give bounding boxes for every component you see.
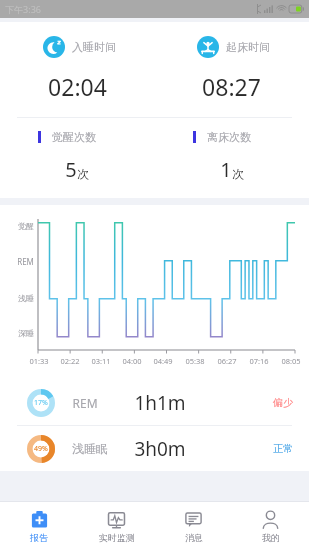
staticText: 我的 (262, 532, 280, 543)
staticText: 觉醒 (18, 221, 34, 231)
button[interactable]: 离床次数 (154, 118, 309, 183)
staticText: 消息 (185, 532, 203, 543)
staticText: 17% (34, 398, 48, 408)
staticText: 起床时间 (226, 40, 270, 54)
staticText: 02:22 (60, 356, 80, 366)
staticText: 03:11 (91, 356, 111, 366)
staticText: 偏少 (273, 396, 293, 409)
staticText: REM (17, 256, 34, 267)
staticText: 1 (220, 156, 232, 183)
staticText: 报告 (30, 532, 48, 543)
staticText: 次 (77, 166, 89, 181)
staticText: 5 (65, 156, 77, 183)
staticText: 3h0m (134, 436, 186, 462)
staticText: 正常 (273, 442, 293, 455)
button[interactable]: 入睡时间 (0, 22, 154, 102)
button[interactable]: 实时监测 (78, 502, 155, 550)
button[interactable]: 49% (0, 426, 309, 471)
staticText: 01:33 (29, 356, 49, 366)
staticText: 04:49 (153, 356, 173, 366)
button[interactable]: 17% (0, 380, 309, 425)
staticText: 实时监测 (99, 532, 135, 543)
staticText: 深睡 (18, 328, 34, 338)
staticText: 08:05 (281, 356, 301, 366)
staticText: 05:38 (185, 356, 205, 366)
button[interactable]: 觉醒次数 (0, 118, 154, 183)
button[interactable]: 消息 (155, 502, 232, 550)
staticText: 1h1m (134, 390, 186, 416)
staticText: 觉醒次数 (52, 130, 96, 144)
staticText: REM (72, 395, 98, 411)
staticText: 下午3:36 (5, 3, 41, 15)
staticText: 浅睡眠 (72, 441, 108, 456)
staticText: 浅睡 (18, 293, 34, 303)
button[interactable]: 起床时间 (154, 22, 309, 102)
staticText: 入睡时间 (72, 40, 116, 54)
staticText: 07:16 (249, 356, 269, 366)
staticText: 次 (232, 166, 244, 181)
button[interactable]: 报告 (0, 502, 78, 550)
staticText: 02:04 (48, 71, 107, 102)
staticText: 08:27 (202, 71, 261, 102)
staticText: 06:27 (217, 356, 237, 366)
button[interactable]: 我的 (232, 502, 309, 550)
staticText: 04:00 (122, 356, 142, 366)
staticText: 49% (34, 444, 48, 454)
staticText: 离床次数 (207, 130, 251, 144)
